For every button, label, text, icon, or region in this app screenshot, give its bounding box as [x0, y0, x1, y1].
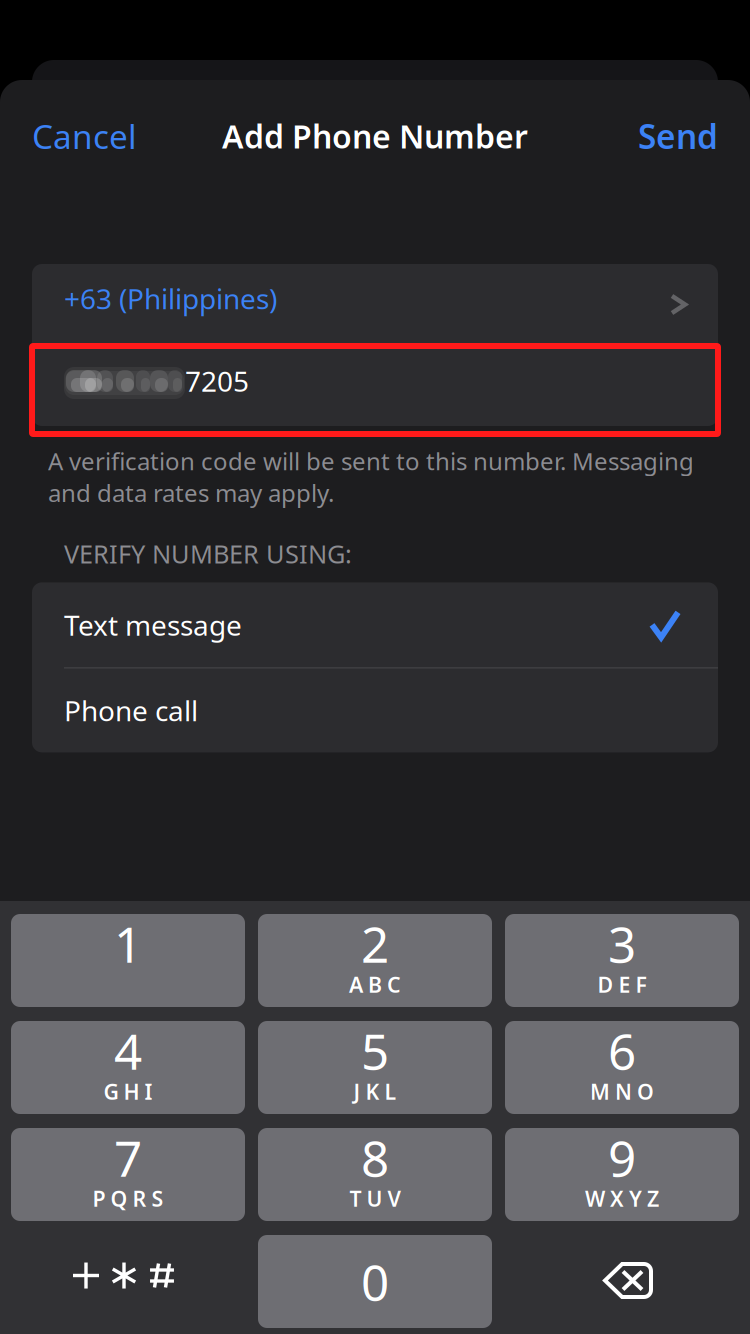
button[interactable]: Plus, star, pound	[11, 1235, 245, 1328]
staticText: 2	[361, 911, 389, 976]
staticText: PQRS	[92, 1184, 163, 1213]
button[interactable]: Phone call	[32, 668, 718, 752]
staticText: 6	[608, 1018, 636, 1083]
staticText: 3	[608, 911, 636, 976]
staticText: 5	[361, 1018, 389, 1083]
button[interactable]: 7	[11, 1128, 245, 1221]
button[interactable]: 2	[258, 914, 492, 1007]
button[interactable]: 9	[505, 1128, 739, 1221]
staticText: 0	[361, 1249, 389, 1314]
button[interactable]: 6	[505, 1021, 739, 1114]
staticText: JKL	[353, 1077, 396, 1106]
button[interactable]: 5	[258, 1021, 492, 1114]
button[interactable]: Send	[638, 114, 718, 158]
staticText: Add Phone Number	[222, 115, 528, 157]
staticText: Cancel	[32, 114, 137, 158]
button[interactable]: 8	[258, 1128, 492, 1221]
button[interactable]: 3	[505, 914, 739, 1007]
staticText: 7205	[185, 362, 249, 400]
staticText: WXYZ	[585, 1184, 659, 1213]
staticText: 4	[114, 1018, 142, 1083]
button[interactable]: 0	[258, 1235, 492, 1328]
button[interactable]: Text message	[32, 582, 718, 667]
staticText: Send	[638, 114, 718, 158]
staticText: MNO	[590, 1077, 654, 1106]
staticText: ABC	[349, 970, 401, 999]
staticText: TUV	[349, 1184, 400, 1213]
button[interactable]: +63 (Philippines)	[32, 264, 718, 345]
button[interactable]: 1	[11, 914, 245, 1007]
staticText: Text message	[64, 606, 242, 643]
staticText: 7	[114, 1125, 142, 1190]
staticText: DEF	[597, 970, 646, 999]
staticText: 8	[361, 1125, 389, 1190]
button[interactable]: 7205	[32, 346, 718, 426]
staticText: VERIFY NUMBER USING:	[64, 537, 352, 570]
button[interactable]: Delete	[505, 1235, 739, 1328]
staticText: A verification code will be sent to this…	[48, 445, 694, 509]
button[interactable]: 4	[11, 1021, 245, 1114]
button[interactable]: Cancel	[32, 114, 137, 158]
staticText: Phone call	[64, 692, 198, 729]
staticText: GHI	[103, 1077, 152, 1106]
staticText: +63 (Philippines)	[64, 280, 277, 317]
staticText: 9	[608, 1125, 636, 1190]
staticText: 1	[114, 911, 142, 976]
